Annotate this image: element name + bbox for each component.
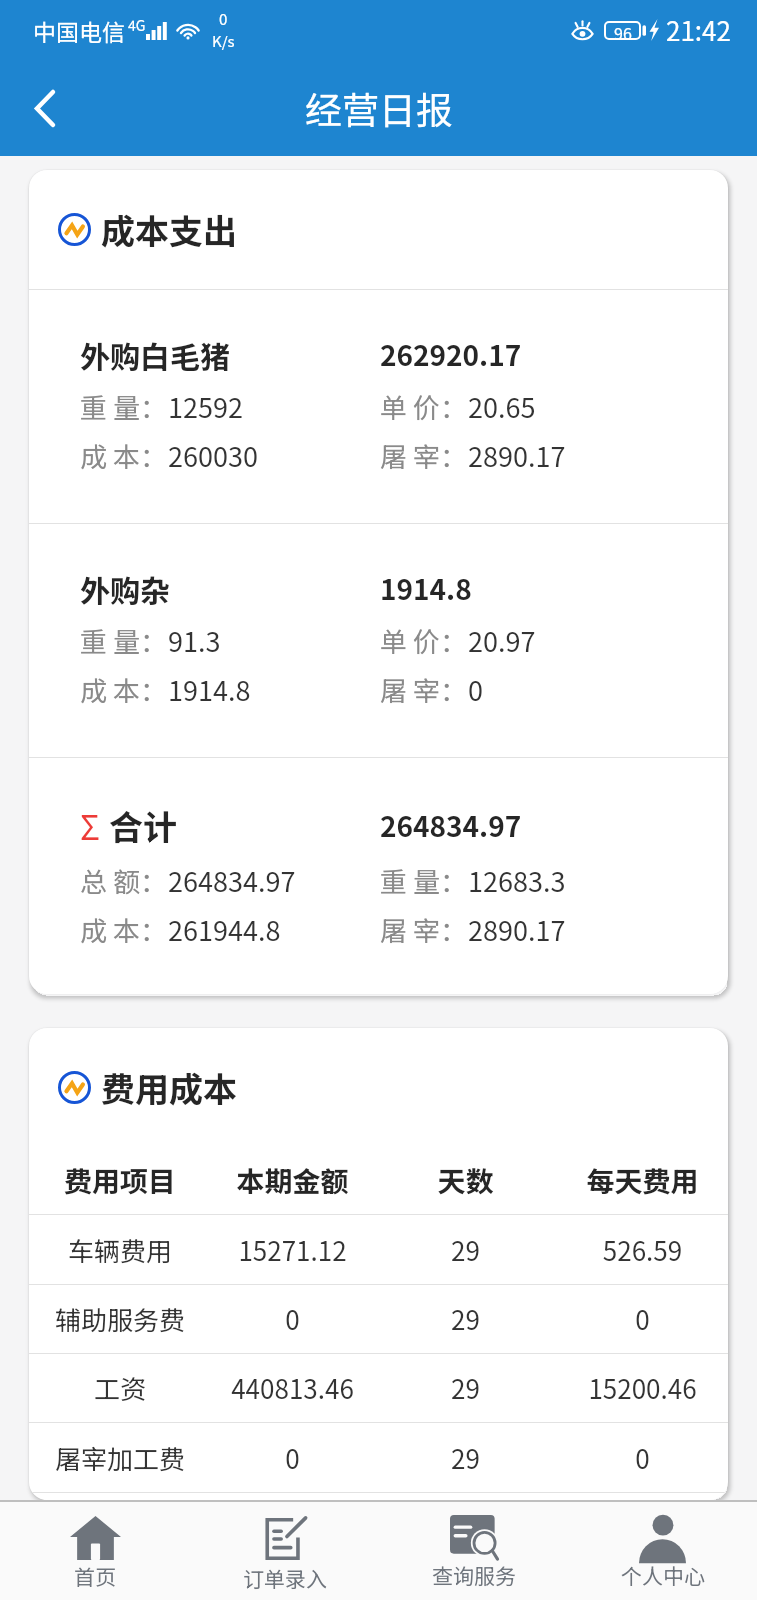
button[interactable]: 订单录入: [190, 1502, 379, 1600]
staticText: 中国电信: [33, 14, 125, 47]
staticText: K/s: [212, 30, 235, 52]
staticText: 屠 宰：: [380, 436, 468, 475]
staticText: 96: [614, 21, 632, 40]
staticText: 29: [374, 1231, 557, 1269]
staticText: 经营日报: [305, 81, 453, 135]
staticText: 重 量：: [380, 861, 468, 900]
staticText: 外购杂: [80, 567, 170, 610]
staticText: 4G: [128, 15, 146, 35]
staticText: 261944.8: [168, 910, 281, 949]
staticText: 重 量：: [80, 387, 168, 426]
staticText: 成本支出: [101, 205, 237, 254]
staticText: 车辆费用: [29, 1231, 211, 1269]
button[interactable]: 首页: [0, 1502, 190, 1600]
staticText: 12683.3: [468, 861, 566, 900]
staticText: 262920.17: [380, 334, 522, 375]
staticText: 成 本：: [80, 910, 168, 949]
staticText: 成 本：: [80, 436, 168, 475]
staticText: 费用项目: [29, 1160, 211, 1201]
staticText: 单 价：: [380, 387, 468, 426]
staticText: 0: [468, 670, 483, 709]
staticText: 天数: [374, 1160, 557, 1201]
staticText: 首页: [74, 1561, 116, 1591]
staticText: 0: [557, 1439, 728, 1477]
staticText: 0: [557, 1300, 728, 1338]
staticText: 29: [374, 1439, 557, 1477]
staticText: 重 量：: [80, 621, 168, 660]
staticText: 440813.46: [211, 1369, 374, 1407]
staticText: 21:42: [666, 11, 731, 49]
staticText: 15200.46: [557, 1369, 728, 1407]
staticText: 0: [219, 8, 228, 30]
staticText: 20.97: [468, 621, 536, 660]
staticText: 264834.97: [380, 805, 522, 846]
staticText: 外购白毛猪: [80, 333, 230, 376]
staticText: 29: [374, 1300, 557, 1338]
button[interactable]: 查询服务: [379, 1502, 568, 1600]
button[interactable]: Back: [0, 60, 90, 156]
staticText: 个人中心: [621, 1560, 705, 1590]
staticText: 91.3: [168, 621, 221, 660]
staticText: 1914.8: [380, 568, 472, 609]
staticText: 2890.17: [468, 436, 566, 475]
staticText: 2890.17: [468, 910, 566, 949]
staticText: 辅助服务费: [29, 1300, 211, 1338]
staticText: 订单录入: [243, 1563, 327, 1593]
staticText: 1914.8: [168, 670, 251, 709]
staticText: 526.59: [557, 1231, 728, 1269]
staticText: 本期金额: [211, 1160, 374, 1201]
staticText: 屠 宰：: [380, 910, 468, 949]
staticText: 264834.97: [168, 861, 296, 900]
staticText: 屠宰加工费: [29, 1439, 211, 1477]
staticText: 260030: [168, 436, 258, 475]
staticText: 总 额：: [80, 861, 168, 900]
staticText: 29: [374, 1369, 557, 1407]
staticText: 工资: [29, 1369, 211, 1407]
staticText: 20.65: [468, 387, 536, 426]
staticText: 屠 宰：: [380, 670, 468, 709]
staticText: 合计: [109, 801, 177, 850]
staticText: 单 价：: [380, 621, 468, 660]
staticText: Σ: [80, 802, 100, 850]
staticText: 12592: [168, 387, 243, 426]
staticText: 每天费用: [557, 1160, 728, 1201]
staticText: 成 本：: [80, 670, 168, 709]
staticText: 查询服务: [432, 1560, 516, 1590]
staticText: 0: [211, 1439, 374, 1477]
button[interactable]: 个人中心: [568, 1502, 757, 1600]
staticText: 费用成本: [101, 1063, 237, 1112]
staticText: 0: [211, 1300, 374, 1338]
staticText: 15271.12: [211, 1231, 374, 1269]
